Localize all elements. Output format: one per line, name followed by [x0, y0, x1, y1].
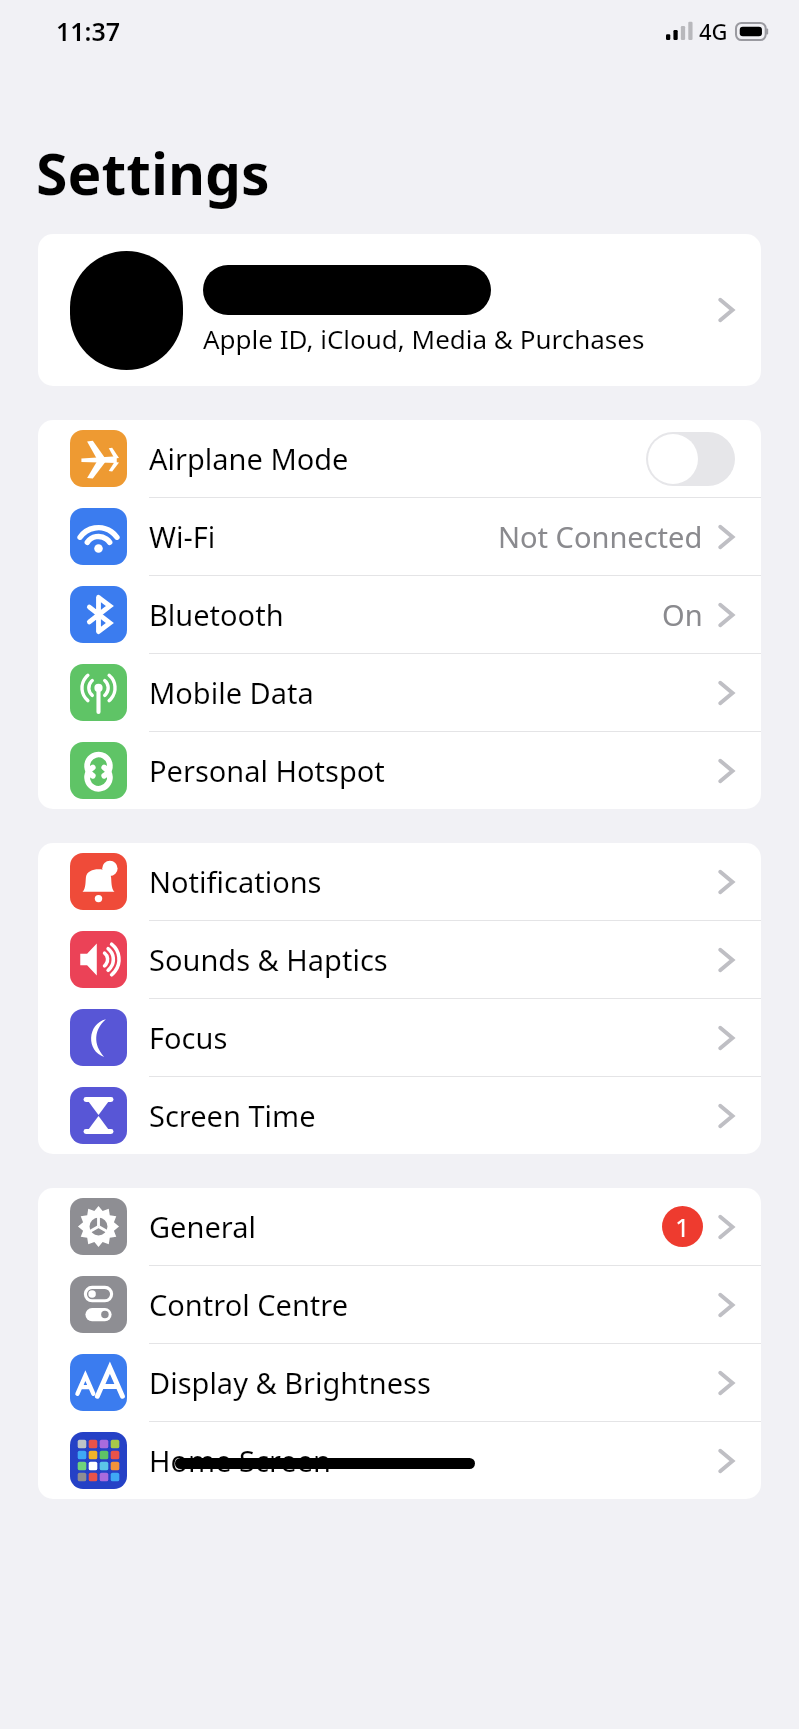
- button[interactable]: Home Screen: [38, 1422, 761, 1499]
- button[interactable]: General: [38, 1188, 761, 1266]
- staticText: Sounds & Haptics: [149, 940, 388, 979]
- staticText: Screen Time: [149, 1096, 316, 1135]
- staticText: 11:37: [56, 14, 121, 48]
- button[interactable]: Bluetooth: [38, 576, 761, 654]
- staticText: Not Connected: [498, 517, 703, 556]
- staticText: Notifications: [149, 862, 322, 901]
- staticText: Mobile Data: [149, 673, 314, 712]
- staticText: Bluetooth: [149, 595, 284, 634]
- staticText: Settings: [36, 134, 270, 212]
- staticText: Focus: [149, 1018, 228, 1057]
- button[interactable]: Display & Brightness: [38, 1344, 761, 1422]
- staticText: Wi-Fi: [149, 517, 216, 556]
- button[interactable]: Focus: [38, 999, 761, 1077]
- staticText: Personal Hotspot: [149, 751, 385, 790]
- button[interactable]: Sounds & Haptics: [38, 921, 761, 999]
- button[interactable]: Notifications: [38, 843, 761, 921]
- staticText: 4G: [699, 16, 728, 46]
- staticText: Control Centre: [149, 1285, 349, 1324]
- button[interactable]: Control Centre: [38, 1266, 761, 1344]
- staticText: Home Screen: [149, 1441, 331, 1480]
- button[interactable]: Mobile Data: [38, 654, 761, 732]
- staticText: General: [149, 1207, 256, 1246]
- button[interactable]: Wi-Fi: [38, 498, 761, 576]
- staticText: Display & Brightness: [149, 1363, 431, 1402]
- button[interactable]: Apple ID, iCloud, Media & Purchases: [38, 234, 761, 386]
- staticText: 1: [675, 1210, 690, 1244]
- staticText: On: [662, 595, 703, 634]
- button[interactable]: Airplane Mode toggle, off: [646, 432, 735, 486]
- staticText: Airplane Mode: [149, 439, 349, 478]
- button[interactable]: Screen Time: [38, 1077, 761, 1154]
- staticText: Apple ID, iCloud, Media & Purchases: [203, 321, 645, 356]
- button[interactable]: Personal Hotspot: [38, 732, 761, 809]
- button[interactable]: Airplane Mode: [38, 420, 761, 498]
